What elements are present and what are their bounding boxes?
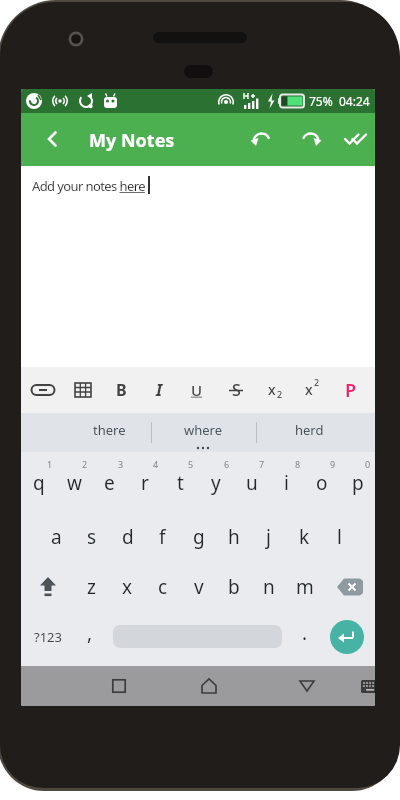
staticText: m	[296, 574, 314, 600]
button[interactable]: l	[322, 520, 357, 554]
staticText: b	[228, 574, 240, 600]
button[interactable]: a	[39, 520, 74, 554]
staticText: 8	[295, 458, 301, 470]
button[interactable]: I	[142, 373, 176, 407]
button[interactable]: e	[92, 466, 127, 500]
button[interactable]: .	[290, 616, 320, 650]
button[interactable]	[33, 119, 73, 159]
button[interactable]: x	[110, 570, 145, 604]
staticText: 2	[277, 388, 283, 400]
button[interactable]: d	[110, 520, 145, 554]
button[interactable]	[242, 119, 282, 159]
button[interactable]: t	[163, 466, 198, 500]
button[interactable]: p	[340, 466, 375, 500]
button[interactable]: j	[251, 520, 286, 554]
button[interactable]: g	[181, 520, 216, 554]
button[interactable]: u	[234, 466, 269, 500]
staticText: ,	[87, 620, 93, 646]
button[interactable]: i	[269, 466, 304, 500]
button[interactable]: s	[74, 520, 109, 554]
button[interactable]: h	[216, 520, 251, 554]
staticText: u	[246, 470, 258, 496]
button[interactable]: x	[259, 373, 293, 407]
staticText: g	[193, 524, 205, 550]
staticText: My Notes	[89, 128, 175, 153]
staticText: 5	[188, 458, 194, 470]
staticText: 2	[314, 376, 320, 388]
staticText: 1	[47, 458, 53, 470]
button[interactable]: w	[57, 466, 92, 500]
staticText: 0	[365, 458, 371, 470]
staticText: .	[302, 620, 308, 646]
staticText: z	[87, 574, 96, 600]
staticText: I	[156, 379, 163, 401]
button[interactable]	[27, 374, 59, 406]
staticText: a	[51, 524, 62, 550]
button[interactable]	[337, 119, 375, 159]
button[interactable]	[290, 119, 330, 159]
button[interactable]: z	[74, 570, 109, 604]
staticText: r	[141, 470, 149, 496]
button[interactable]: there	[54, 413, 164, 447]
button[interactable]: n	[251, 570, 286, 604]
staticText: herd	[295, 421, 324, 439]
button[interactable]: o	[304, 466, 339, 500]
button[interactable]: k	[287, 520, 322, 554]
staticText: s	[87, 524, 97, 550]
staticText: o	[316, 470, 328, 496]
button[interactable]: ?123	[24, 620, 72, 654]
staticText: y	[211, 470, 221, 496]
button[interactable]: m	[287, 570, 322, 604]
staticText: v	[194, 574, 204, 600]
staticText: B	[116, 379, 127, 401]
staticText: t	[177, 470, 184, 496]
staticText: d	[122, 524, 134, 550]
button[interactable]	[355, 668, 375, 704]
button[interactable]	[27, 569, 69, 605]
staticText: 04:24	[339, 93, 370, 109]
staticText: 3	[118, 458, 124, 470]
staticText: 6	[224, 458, 230, 470]
button[interactable]: y	[198, 466, 233, 500]
staticText: q	[33, 470, 45, 496]
staticText: f	[159, 524, 166, 550]
button[interactable]: S	[219, 373, 253, 407]
button[interactable]: P	[334, 373, 368, 407]
staticText: x	[268, 380, 276, 399]
staticText: n	[263, 574, 275, 600]
button[interactable]: q	[21, 466, 56, 500]
button[interactable]: b	[216, 570, 251, 604]
button[interactable]	[330, 620, 364, 654]
button[interactable]	[329, 569, 371, 605]
button[interactable]: c	[145, 570, 180, 604]
staticText: x	[305, 380, 313, 399]
button[interactable]	[191, 668, 227, 704]
staticText: p	[352, 470, 364, 496]
staticText: there	[93, 421, 126, 439]
staticText: i	[284, 470, 289, 496]
button[interactable]: U	[180, 373, 214, 407]
staticText: k	[299, 524, 310, 550]
staticText: j	[266, 524, 271, 550]
button[interactable]: ,	[75, 616, 105, 650]
staticText: P	[345, 378, 357, 403]
staticText: where	[184, 421, 223, 439]
staticText: 9	[330, 458, 336, 470]
staticText: ?123	[34, 628, 62, 646]
button[interactable]: herd	[259, 413, 359, 447]
button[interactable]	[67, 374, 99, 406]
button[interactable]: v	[181, 570, 216, 604]
button[interactable]	[289, 668, 325, 704]
staticText: l	[337, 524, 342, 550]
button[interactable]: where	[158, 413, 248, 447]
staticText: 2	[82, 458, 88, 470]
button[interactable]: x	[296, 373, 330, 407]
button[interactable]	[101, 668, 137, 704]
staticText: c	[158, 574, 168, 600]
button[interactable]: r	[127, 466, 162, 500]
staticText: e	[104, 470, 115, 496]
button[interactable]: f	[145, 520, 180, 554]
staticText: Add your notes here	[32, 177, 145, 195]
button[interactable]: B	[104, 373, 138, 407]
